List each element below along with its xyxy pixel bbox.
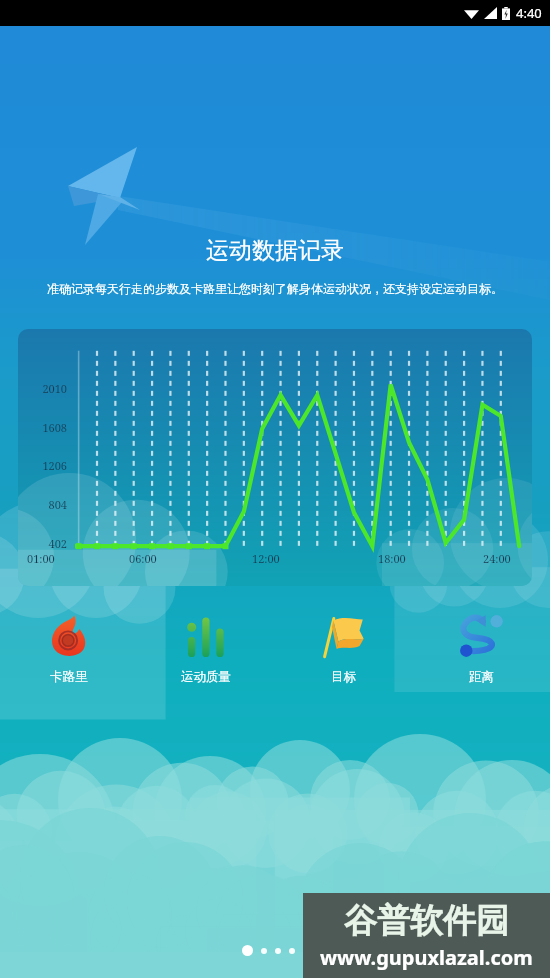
staticText: 运动质量: [181, 669, 231, 685]
button[interactable]: 2010: [18, 329, 532, 586]
button[interactable]: 运动质量: [137, 608, 274, 689]
staticText: www.gupuxlazal.com: [320, 944, 533, 971]
staticText: 402: [25, 536, 67, 551]
staticText: 18:00: [378, 551, 426, 566]
staticText: 距离: [469, 669, 494, 685]
staticText: 准确记录每天行走的步数及卡路里让您时刻了解身体运动状况，还支持设定运动目标。: [30, 281, 520, 296]
staticText: 卡路里: [50, 669, 88, 685]
button[interactable]: 卡路里: [0, 608, 137, 689]
staticText: 06:00: [129, 551, 177, 566]
staticText: 804: [25, 497, 67, 512]
staticText: 4:40: [516, 4, 542, 22]
staticText: 谷普软件园: [344, 900, 509, 942]
staticText: 24:00: [483, 551, 531, 566]
staticText: 1206: [25, 458, 67, 473]
staticText: 2010: [25, 381, 67, 396]
staticText: 12:00: [252, 551, 300, 566]
staticText: 1608: [25, 420, 67, 435]
staticText: 01:00: [27, 551, 75, 566]
button[interactable]: 距离: [412, 608, 550, 689]
staticText: 目标: [331, 669, 356, 685]
button[interactable]: 目标: [274, 608, 412, 689]
staticText: 运动数据记录: [0, 236, 550, 265]
